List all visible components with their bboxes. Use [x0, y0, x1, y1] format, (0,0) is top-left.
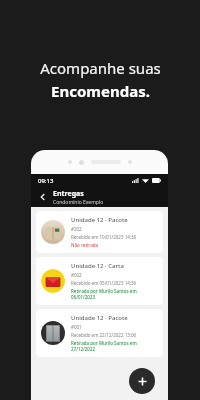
button[interactable]: Adicionar encomenda [129, 368, 155, 394]
staticText: Recebido em 22/12/2022 13:06 [71, 332, 137, 338]
staticText: Unidade 12 · Carta [71, 262, 124, 270]
staticText: Não retirada [71, 242, 99, 248]
staticText: Recebido em 05/01/2023 14:36 [71, 280, 137, 286]
staticText: Unidade 12 · Pacote [71, 314, 128, 322]
button[interactable]: Unidade 12 · Carta [36, 257, 163, 305]
staticText: #002 [71, 272, 82, 278]
staticText: Acompanhe suas [40, 58, 161, 78]
staticText: Retirada por Murilo Santos em 27/12/2022 [71, 340, 158, 352]
staticText: Unidade 12 · Pacote [71, 216, 128, 224]
staticText: Encomendas. [51, 81, 150, 101]
staticText: #001 [71, 324, 82, 330]
staticText: Retirada por Murilo Santos em 06/01/2023 [71, 288, 158, 300]
staticText: Entregas [53, 189, 84, 199]
button[interactable]: Unidade 12 · Pacote [36, 211, 163, 253]
staticText: #202 [71, 226, 82, 232]
staticText: Condomínio Exemplo [53, 199, 104, 206]
staticText: Recebido em 10/01/2023 14:36 [71, 234, 137, 240]
button[interactable]: Voltar [36, 190, 50, 204]
button[interactable]: Unidade 12 · Pacote [36, 309, 163, 357]
staticText: 09:13 [38, 177, 54, 185]
